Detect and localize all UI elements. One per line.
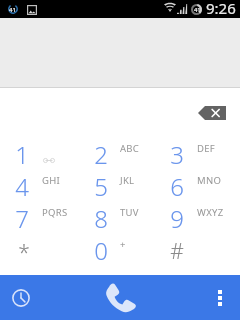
staticText: 4 bbox=[15, 170, 29, 202]
button[interactable]: 1 bbox=[0, 138, 80, 170]
staticText: 3 bbox=[170, 138, 184, 170]
staticText: WXYZ bbox=[197, 206, 224, 219]
staticText: MNO bbox=[197, 174, 222, 187]
button[interactable]: Call history bbox=[4, 275, 38, 320]
staticText: JKL bbox=[120, 174, 135, 187]
staticText: ABC bbox=[120, 142, 140, 155]
staticText: 7 bbox=[15, 202, 29, 234]
staticText: 6 bbox=[170, 170, 184, 202]
staticText: * bbox=[18, 238, 30, 267]
staticText: + bbox=[120, 238, 126, 251]
button[interactable]: 9 bbox=[160, 202, 240, 234]
staticText: 9 bbox=[170, 202, 184, 234]
staticText: 5 bbox=[94, 170, 108, 202]
button[interactable]: 2 bbox=[80, 138, 160, 170]
staticText: DEF bbox=[197, 142, 216, 155]
staticText: 41 bbox=[194, 6, 201, 14]
button[interactable]: 4 bbox=[0, 170, 80, 202]
button[interactable]: More options bbox=[203, 275, 236, 320]
staticText: GHI bbox=[42, 174, 61, 187]
staticText: TUV bbox=[120, 206, 139, 219]
button[interactable]: 5 bbox=[80, 170, 160, 202]
staticText: 9:26 bbox=[206, 0, 236, 16]
button[interactable]: Backspace bbox=[198, 106, 226, 120]
button[interactable]: 8 bbox=[80, 202, 160, 234]
button[interactable]: 0 bbox=[80, 234, 160, 266]
staticText: 2 bbox=[94, 138, 108, 170]
button[interactable]: 7 bbox=[0, 202, 80, 234]
staticText: 41 bbox=[9, 6, 16, 14]
button[interactable]: * bbox=[0, 234, 80, 266]
button[interactable]: 6 bbox=[160, 170, 240, 202]
staticText: 1 bbox=[15, 138, 29, 170]
staticText: 0 bbox=[94, 234, 108, 266]
staticText: PQRS bbox=[42, 206, 68, 219]
button[interactable]: Dial bbox=[103, 275, 137, 320]
staticText: 8 bbox=[94, 202, 108, 234]
button[interactable]: # bbox=[160, 234, 240, 266]
staticText: # bbox=[170, 237, 184, 266]
button[interactable]: 3 bbox=[160, 138, 240, 170]
